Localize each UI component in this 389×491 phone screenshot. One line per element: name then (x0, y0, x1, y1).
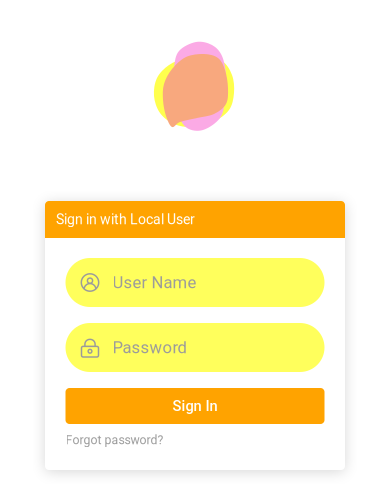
button[interactable]: Forgot password? (65, 430, 324, 450)
staticText: Sign in with Local User (56, 211, 195, 228)
button[interactable]: Sign In (65, 388, 324, 424)
staticText: User Name (112, 273, 196, 292)
staticText: Forgot password? (65, 433, 163, 447)
staticText: Sign In (172, 397, 217, 415)
staticText: Password (112, 338, 186, 357)
